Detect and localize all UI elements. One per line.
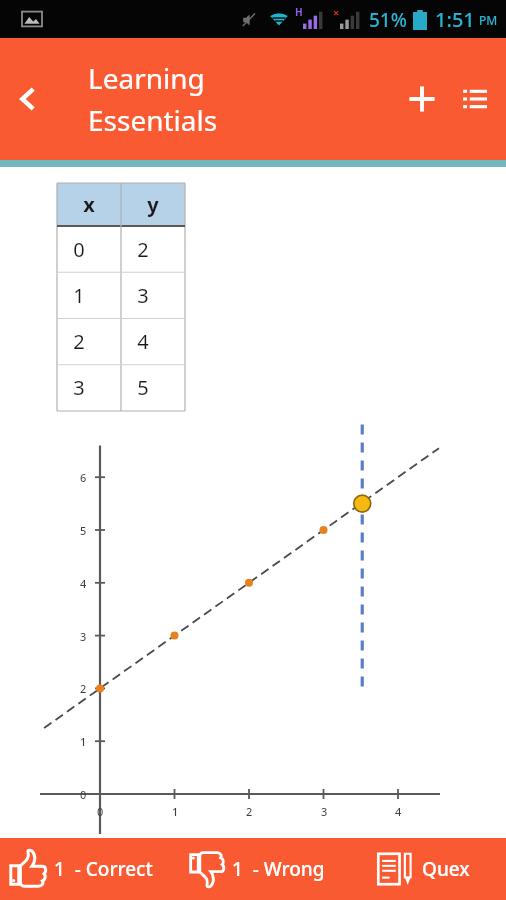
staticText: 1:51: [435, 6, 475, 33]
staticText: Quex: [422, 856, 470, 882]
staticText: 3: [321, 804, 328, 819]
staticText: ×: [333, 5, 340, 20]
staticText: 3: [137, 282, 149, 309]
staticText: 2: [73, 328, 85, 355]
staticText: Learning: [88, 59, 205, 97]
staticText: 1: [172, 804, 179, 819]
staticText: 5: [137, 374, 149, 401]
staticText: 4: [395, 804, 402, 819]
button[interactable]: Add: [394, 71, 450, 127]
staticText: 4: [80, 576, 87, 591]
staticText: 5: [80, 523, 87, 538]
staticText: 6: [80, 470, 87, 485]
button[interactable]: Back: [0, 71, 56, 127]
staticText: 1 - Wrong: [232, 856, 325, 882]
staticText: 2: [137, 236, 149, 263]
staticText: 1: [80, 734, 87, 749]
staticText: x: [83, 191, 95, 218]
staticText: 3: [73, 374, 85, 401]
staticText: 0: [97, 804, 104, 819]
button[interactable]: List: [450, 71, 500, 127]
staticText: Essentials: [88, 101, 218, 139]
staticText: 2: [80, 681, 87, 696]
staticText: 1 - Correct: [54, 856, 153, 882]
staticText: 4: [137, 328, 149, 355]
staticText: 2: [246, 804, 253, 819]
staticText: 0: [73, 236, 85, 263]
staticText: 1: [73, 282, 85, 309]
staticText: 3: [80, 629, 87, 644]
staticText: PM: [479, 12, 498, 28]
button[interactable]: 1 - Correct: [0, 838, 188, 900]
staticText: 51%: [369, 7, 407, 33]
button[interactable]: Quex: [376, 838, 506, 900]
staticText: H: [295, 5, 303, 19]
button[interactable]: 1 - Wrong: [188, 838, 376, 900]
staticText: y: [147, 191, 159, 218]
staticText: 0: [80, 787, 87, 802]
